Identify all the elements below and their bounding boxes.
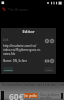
staticText: http://mudwire.com/rss/index.rss?flighte…	[3, 44, 44, 56]
button[interactable]: CANCEL	[3, 67, 13, 72]
staticText: CANCEL	[4, 68, 13, 71]
button[interactable]: Edit link	[45, 39, 49, 43]
staticText: Sous conditions	[40, 93, 60, 97]
button[interactable]: More options	[50, 59, 54, 63]
staticText: 60€	[9, 91, 24, 100]
button[interactable]: Copy	[45, 59, 49, 63]
staticText: J'en profite	[24, 94, 38, 98]
staticText: Editor	[1, 29, 56, 35]
button[interactable]: J'en profite	[24, 93, 38, 98]
button[interactable]: SAVE	[44, 67, 54, 72]
staticText: Un smartphone flambant neuf a prix mini,…	[2, 83, 64, 87]
staticText: Name: DN, fichier	[3, 59, 45, 63]
staticText: voir offre	[40, 96, 52, 100]
staticText: SAVE	[46, 68, 52, 71]
staticText: The Browser	[8, 7, 29, 12]
button[interactable]: Open link	[50, 39, 54, 43]
button[interactable]: Un smartphone flambant neuf a prix mini,…	[0, 82, 64, 100]
staticText: Link	[3, 38, 9, 42]
